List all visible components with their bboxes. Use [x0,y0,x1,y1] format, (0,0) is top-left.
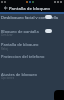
staticText: Proteccion del telefono [1,54,45,58]
button[interactable]: Back [2,4,9,11]
button[interactable]: Overlay [54,90,64,100]
staticText: Pantalla de bloqueo [9,5,50,11]
staticText: Reloj [1,47,8,51]
button[interactable]: Toggle [45,15,52,19]
staticText: Deslizar [1,33,13,37]
staticText: Desbloqueo facial y con huella [1,15,58,19]
staticText: Bloqueo de pantalla [1,29,39,33]
staticText: Ajustes de bloqueo [1,72,37,76]
staticText: Pantalla de bloqueo [1,42,39,46]
staticText: Opciones [1,76,15,80]
button[interactable]: Toggle [45,29,52,33]
